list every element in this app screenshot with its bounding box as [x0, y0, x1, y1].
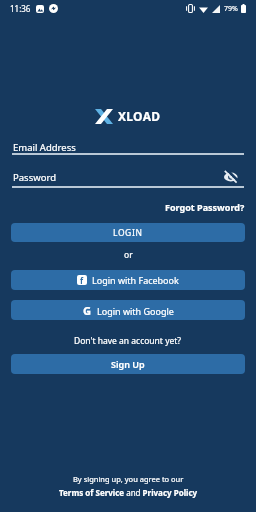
button[interactable]: f — [11, 270, 245, 290]
staticText: 79% — [224, 4, 238, 14]
button[interactable]: G — [11, 300, 245, 320]
staticText: Password — [13, 171, 56, 184]
staticText: Sign Up — [111, 358, 145, 370]
staticText: Don't have an account yet? — [74, 335, 182, 347]
staticText: XLOAD — [118, 108, 161, 124]
staticText: f — [80, 275, 84, 285]
staticText: Login with Facebook — [92, 274, 179, 286]
button[interactable]: LOGIN — [11, 223, 245, 242]
staticText: By signing up, you agree to our — [73, 474, 184, 484]
button[interactable]: Terms of Service and Privacy Policy — [59, 487, 198, 498]
staticText: 11:36 — [10, 3, 31, 14]
button[interactable]: Forgot Password? — [165, 201, 245, 213]
staticText: LOGIN — [113, 227, 143, 239]
staticText: or — [124, 249, 133, 261]
staticText: Login with Google — [97, 305, 174, 317]
button[interactable]: Sign Up — [11, 354, 245, 374]
staticText: G — [83, 303, 92, 318]
staticText: Email Address — [13, 141, 76, 154]
